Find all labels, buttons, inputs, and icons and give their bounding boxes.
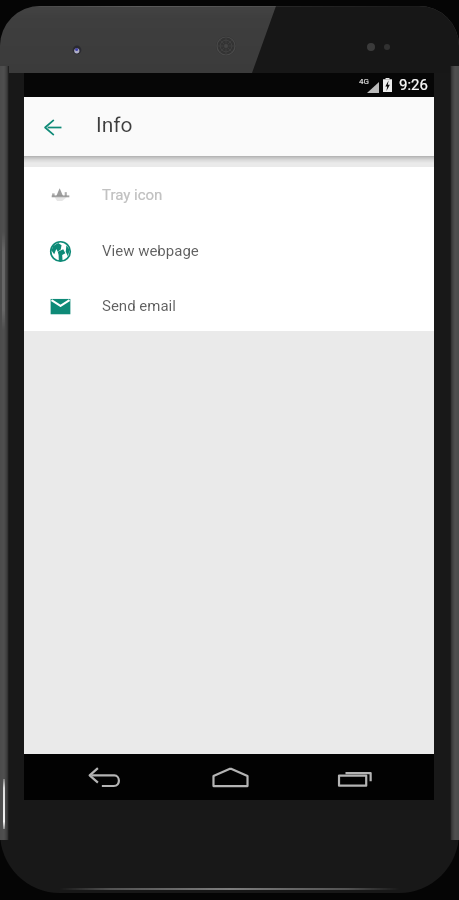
button[interactable]: Recents [320, 754, 390, 800]
button[interactable]: Tray icon [24, 167, 434, 223]
staticText: Tray icon [102, 186, 163, 204]
button[interactable]: Send email [24, 278, 434, 334]
staticText: Info [96, 113, 133, 138]
staticText: Send email [102, 297, 176, 315]
staticText: 4G [359, 77, 369, 86]
button[interactable]: Home [195, 754, 265, 800]
staticText: View webpage [102, 242, 199, 260]
button[interactable]: View webpage [24, 223, 434, 279]
button[interactable]: Back [29, 103, 77, 151]
button[interactable]: Back [69, 754, 139, 800]
staticText: 9:26 [399, 76, 428, 94]
